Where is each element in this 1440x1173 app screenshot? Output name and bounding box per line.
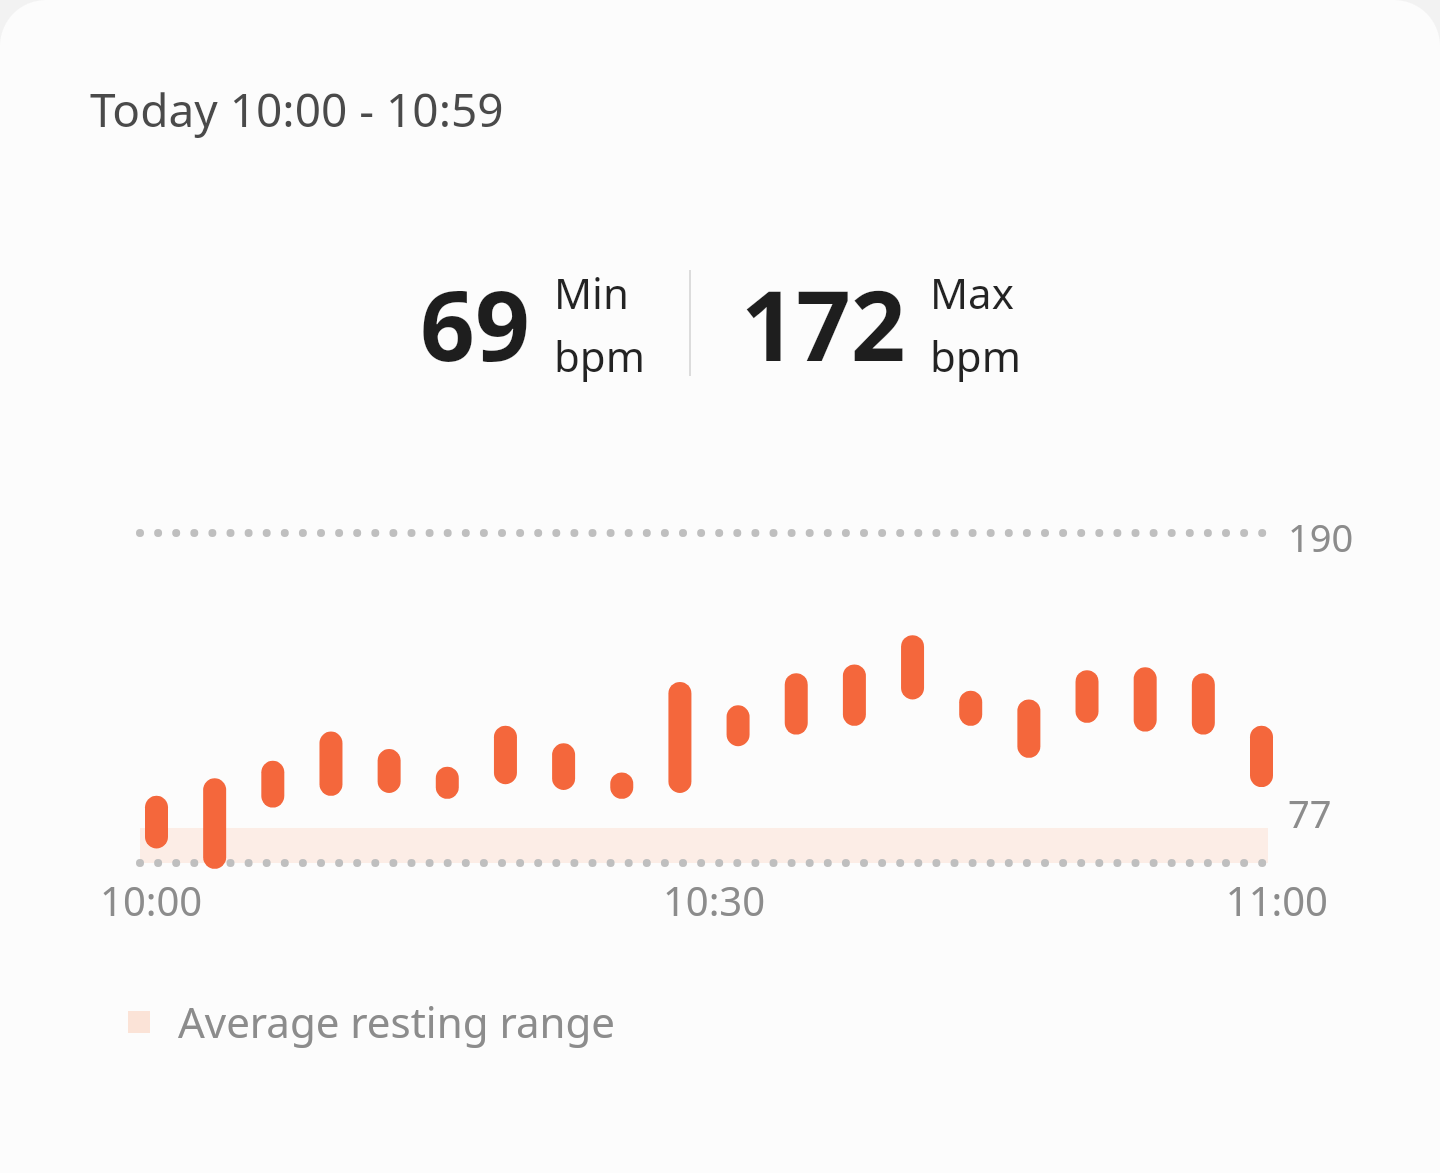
staticText: 69 <box>420 258 530 389</box>
staticText: 190 <box>1288 511 1354 563</box>
staticText: 172 <box>741 258 906 389</box>
staticText: bpm <box>930 327 1021 384</box>
button[interactable]: Today 10:00 - 10:59 <box>0 78 1440 141</box>
button[interactable]: 69 <box>420 258 645 389</box>
staticText: 10:30 <box>280 873 1148 927</box>
staticText: Min <box>554 264 629 321</box>
button[interactable]: Average resting range <box>0 993 1440 1050</box>
staticText: 11:00 <box>1148 873 1328 927</box>
staticText: Max <box>930 264 1014 321</box>
staticText: 10:00 <box>100 873 280 927</box>
button[interactable]: 172 <box>741 258 1021 389</box>
staticText: Average resting range <box>178 993 615 1050</box>
staticText: Today 10:00 - 10:59 <box>90 78 504 141</box>
staticText: 77 <box>1288 787 1332 839</box>
button[interactable]: Heart rate chart, 69 to 172 bpm <box>0 511 1440 911</box>
staticText: bpm <box>554 327 645 384</box>
